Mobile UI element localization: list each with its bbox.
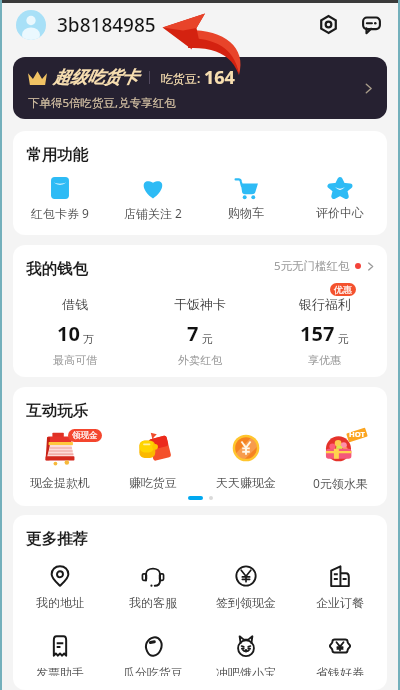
button[interactable]: 干饭神卡 bbox=[137, 296, 262, 367]
button[interactable]: Settings bbox=[318, 14, 339, 35]
staticText: 外卖红包 bbox=[178, 353, 222, 367]
staticText: HOT bbox=[349, 429, 365, 439]
button[interactable]: 签到领现金 bbox=[199, 565, 293, 610]
staticText: 我的地址 bbox=[36, 595, 84, 610]
button[interactable]: 红包卡券 9 bbox=[13, 177, 106, 221]
staticText: 赚吃货豆 bbox=[129, 475, 177, 490]
button[interactable]: Profile avatar bbox=[16, 10, 46, 40]
staticText: 157 bbox=[300, 320, 335, 347]
button[interactable]: 购物车 bbox=[199, 177, 293, 220]
staticText: 评价中心 bbox=[316, 205, 364, 220]
button[interactable]: 超级吃货卡 bbox=[13, 57, 387, 119]
button[interactable]: HOT bbox=[293, 427, 387, 491]
staticText: 吃货豆: bbox=[161, 70, 201, 86]
staticText: 天天赚现金 bbox=[216, 475, 276, 490]
button[interactable]: 瓜分吃货豆 bbox=[106, 635, 199, 676]
staticText: 发票助手 bbox=[36, 665, 84, 676]
staticText: 我的客服 bbox=[129, 595, 177, 610]
staticText: 164 bbox=[204, 65, 235, 90]
staticText: 下单得5倍吃货豆,兑专享红包 bbox=[28, 95, 176, 111]
staticText: 10 bbox=[57, 320, 80, 347]
staticText: 企业订餐 bbox=[316, 595, 364, 610]
staticText: 3b8184985 bbox=[57, 12, 156, 38]
button[interactable]: 企业订餐 bbox=[293, 565, 387, 610]
button[interactable]: 借钱 bbox=[13, 296, 137, 367]
button[interactable]: 冲吧饿小宝 bbox=[199, 635, 293, 676]
button[interactable]: 领现金 bbox=[13, 427, 106, 490]
button[interactable]: 银行福利 bbox=[262, 296, 387, 367]
staticText: 红包卡券 9 bbox=[31, 205, 89, 221]
button[interactable]: 省钱好券 bbox=[293, 635, 387, 676]
staticText: 购物车 bbox=[228, 205, 264, 220]
staticText: 冲吧饿小宝 bbox=[216, 665, 276, 676]
staticText: 更多推荐 bbox=[26, 529, 88, 549]
button[interactable]: Messages bbox=[361, 14, 382, 35]
staticText: 超级吃货卡 bbox=[53, 67, 138, 88]
button[interactable]: 评价中心 bbox=[293, 177, 387, 220]
staticText: 优惠 bbox=[334, 284, 352, 295]
staticText: 互动玩乐 bbox=[26, 401, 88, 421]
button[interactable]: 天天赚现金 bbox=[199, 427, 293, 490]
button[interactable]: 5元无门槛红包 bbox=[274, 258, 375, 274]
button[interactable]: 我的客服 bbox=[106, 565, 199, 610]
staticText: 我的钱包 bbox=[26, 259, 88, 279]
button[interactable]: 发票助手 bbox=[13, 635, 106, 676]
staticText: 元 bbox=[202, 332, 213, 346]
staticText: 现金提款机 bbox=[30, 475, 90, 490]
staticText: 领现金 bbox=[72, 430, 98, 441]
staticText: 元 bbox=[338, 332, 349, 346]
staticText: 干饭神卡 bbox=[174, 296, 226, 312]
staticText: 瓜分吃货豆 bbox=[123, 665, 183, 676]
staticText: 省钱好券 bbox=[316, 665, 364, 676]
staticText: 最高可借 bbox=[53, 353, 97, 367]
staticText: 5元无门槛红包 bbox=[274, 258, 350, 274]
staticText: 借钱 bbox=[62, 296, 88, 312]
staticText: 享优惠 bbox=[308, 353, 341, 367]
staticText: 常用功能 bbox=[26, 145, 88, 165]
button[interactable]: 店铺关注 2 bbox=[106, 177, 199, 221]
staticText: 7 bbox=[187, 320, 199, 347]
staticText: 签到领现金 bbox=[216, 595, 276, 610]
staticText: 0元领水果 bbox=[313, 475, 368, 491]
button[interactable]: 我的地址 bbox=[13, 565, 106, 610]
staticText: 万 bbox=[83, 332, 94, 346]
button[interactable]: 赚吃货豆 bbox=[106, 427, 199, 490]
staticText: 银行福利 bbox=[299, 296, 351, 312]
staticText: 店铺关注 2 bbox=[124, 205, 182, 221]
